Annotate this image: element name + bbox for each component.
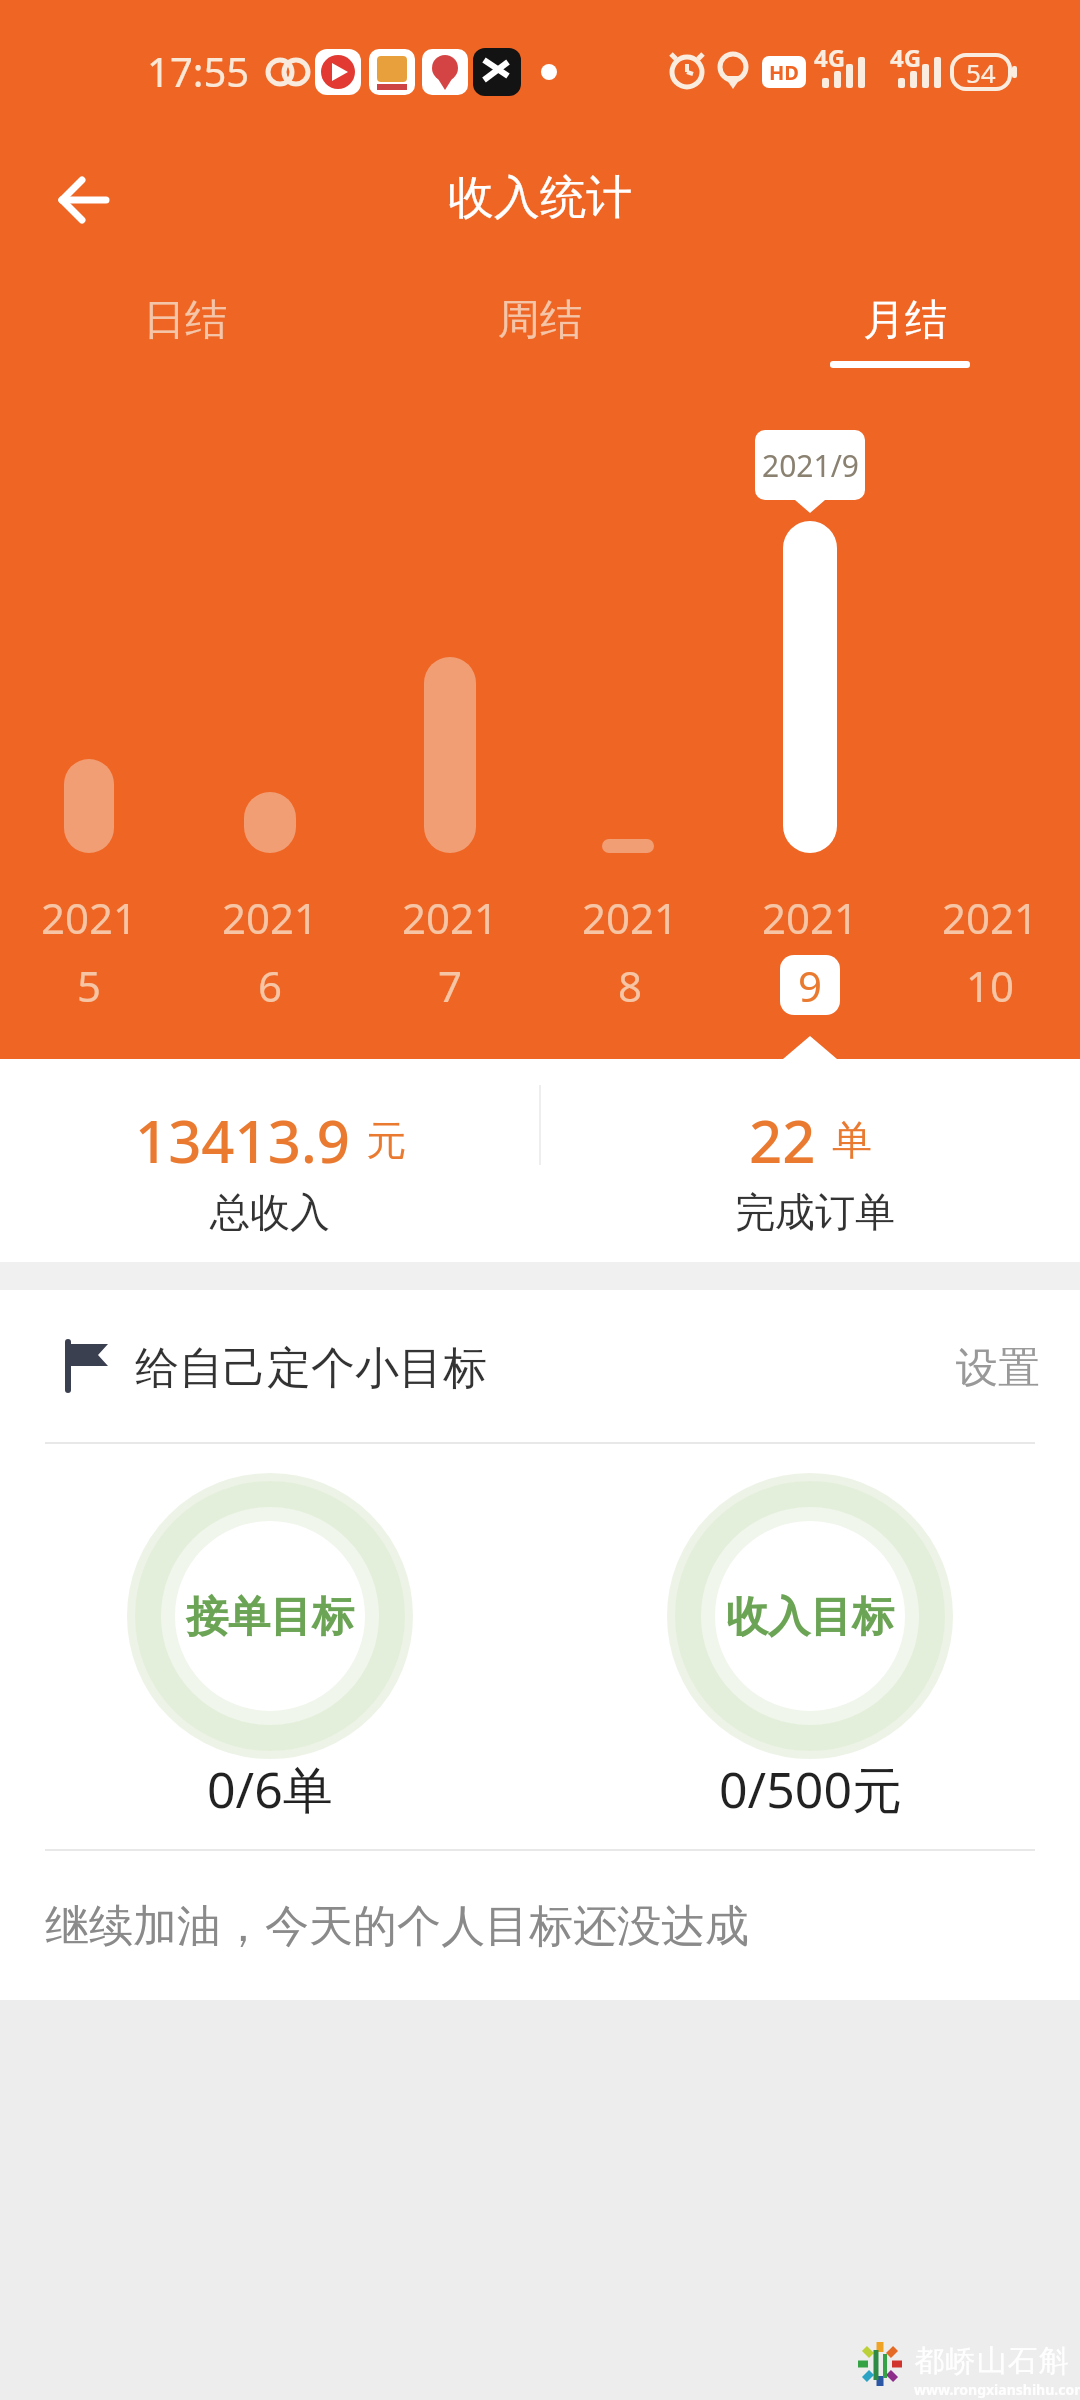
button[interactable]: 接单目标 [130, 1477, 410, 1757]
staticText: 17:55 [147, 44, 250, 98]
staticText: 元 [366, 1115, 406, 1165]
button[interactable] [40, 160, 120, 240]
staticText: 2021 [582, 889, 679, 946]
staticText: 总收入 [210, 1187, 330, 1237]
button[interactable]: 周结 [440, 280, 640, 360]
button[interactable]: 13413.9 [0, 1090, 540, 1190]
staticText: 日结 [143, 294, 227, 347]
staticText: 2021 [942, 889, 1039, 946]
staticText: 0/6单 [207, 1755, 333, 1823]
staticText: 6 [258, 957, 283, 1014]
staticText: 接单目标 [186, 1591, 354, 1644]
staticText: 4G [814, 41, 846, 74]
staticText: 13413.9 [135, 1101, 350, 1180]
staticText: 2021 [41, 889, 138, 946]
staticText: 2021/9 [762, 445, 859, 486]
staticText: www.rongxianshihu.com [914, 2380, 1080, 2399]
staticText: 收入目标 [726, 1591, 894, 1644]
staticText: 2021 [762, 889, 859, 946]
staticText: 给自己定个小目标 [135, 1341, 487, 1396]
button[interactable]: 给自己定个小目标 [135, 1330, 635, 1406]
staticText: 设置 [956, 1342, 1040, 1395]
staticText: 5 [77, 957, 102, 1014]
button[interactable]: 收入目标 [670, 1477, 950, 1757]
button[interactable]: 月结 [805, 280, 1005, 360]
staticText: 月结 [863, 294, 947, 347]
button[interactable]: 22 [540, 1090, 1080, 1190]
staticText: 7 [438, 957, 463, 1014]
staticText: 9 [798, 957, 823, 1014]
staticText: 2021 [402, 889, 499, 946]
staticText: 完成订单 [735, 1187, 895, 1237]
staticText: 10 [966, 957, 1015, 1014]
staticText: 都峤山石斛 [914, 2342, 1069, 2380]
staticText: 22 [749, 1101, 816, 1180]
staticText: 4G [890, 41, 922, 74]
staticText: 单 [832, 1115, 872, 1165]
staticText: 继续加油，今天的个人目标还没达成 [45, 1899, 749, 1954]
staticText: HD [769, 59, 799, 86]
staticText: 2021 [222, 889, 319, 946]
staticText: 0/500元 [719, 1755, 902, 1823]
button[interactable]: 设置 [900, 1330, 1040, 1406]
staticText: 54 [966, 55, 996, 90]
staticText: 8 [618, 957, 643, 1014]
button[interactable]: 日结 [85, 280, 285, 360]
staticText: 周结 [498, 294, 582, 347]
staticText: 收入统计 [448, 169, 632, 227]
